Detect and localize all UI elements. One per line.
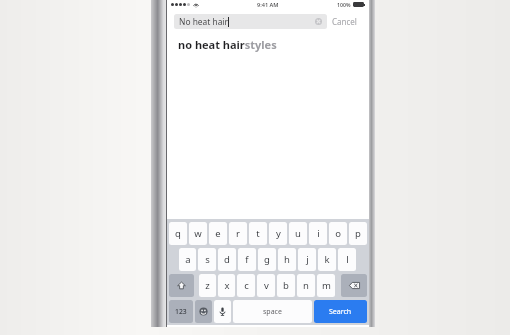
button[interactable]: t [249, 222, 267, 245]
staticText: 123 [175, 307, 187, 316]
staticText: g [264, 253, 270, 266]
staticText: 100% [337, 1, 351, 8]
button[interactable]: f [238, 248, 256, 271]
staticText: h [284, 253, 290, 266]
staticText: i [317, 227, 320, 240]
button[interactable]: z [199, 274, 216, 297]
button[interactable]: o [329, 222, 347, 245]
staticText: d [224, 253, 230, 266]
button[interactable]: Dictate [214, 300, 231, 323]
button[interactable]: y [269, 222, 287, 245]
staticText: f [245, 253, 249, 266]
staticText: No heat hair [179, 16, 228, 27]
button[interactable]: d [218, 248, 236, 271]
button[interactable]: Cancel [327, 12, 362, 31]
button[interactable]: u [289, 222, 307, 245]
staticText: p [355, 227, 361, 240]
button[interactable]: w [189, 222, 207, 245]
button[interactable]: Delete [341, 274, 367, 297]
button[interactable]: x [218, 274, 235, 297]
staticText: no heat hairstyles [178, 37, 277, 52]
staticText: k [324, 253, 330, 266]
button[interactable]: no heat hairstyles [167, 33, 369, 55]
staticText: s [205, 253, 210, 266]
button[interactable]: p [349, 222, 367, 245]
button[interactable]: h [278, 248, 296, 271]
button[interactable]: i [309, 222, 327, 245]
button[interactable]: m [317, 274, 335, 297]
staticText: j [306, 253, 309, 266]
staticText: x [224, 279, 230, 292]
button[interactable]: c [237, 274, 255, 297]
button[interactable]: No heat hair [174, 14, 327, 29]
staticText: w [194, 227, 202, 240]
staticText: n [303, 279, 309, 292]
staticText: Search [329, 307, 352, 317]
button[interactable]: 123 [169, 300, 193, 323]
staticText: t [256, 227, 260, 240]
staticText: z [205, 279, 210, 292]
button[interactable]: k [318, 248, 336, 271]
staticText: b [283, 279, 289, 292]
button[interactable]: a [179, 248, 196, 271]
button[interactable]: Shift [169, 274, 194, 297]
staticText: a [185, 253, 191, 266]
staticText: space [263, 307, 282, 317]
staticText: 9:41 AM [257, 1, 279, 9]
staticText: y [276, 227, 281, 240]
staticText: m [322, 279, 331, 292]
button[interactable]: l [338, 248, 356, 271]
button[interactable]: Emoji [195, 300, 212, 323]
staticText: e [215, 227, 221, 240]
staticText: o [335, 227, 341, 240]
staticText: r [236, 227, 240, 240]
button[interactable]: r [229, 222, 247, 245]
button[interactable]: Search [314, 300, 367, 323]
button[interactable]: g [258, 248, 276, 271]
staticText: c [244, 279, 249, 292]
staticText: u [295, 227, 301, 240]
staticText: l [346, 253, 349, 266]
button[interactable]: s [198, 248, 216, 271]
button[interactable]: n [297, 274, 315, 297]
button[interactable]: b [277, 274, 295, 297]
staticText: v [264, 279, 269, 292]
button[interactable]: q [169, 222, 187, 245]
staticText: Cancel [332, 16, 357, 27]
button[interactable]: space [233, 300, 312, 323]
button[interactable]: j [298, 248, 316, 271]
staticText: q [175, 227, 181, 240]
button[interactable]: Clear text [315, 18, 322, 25]
button[interactable]: e [209, 222, 227, 245]
button[interactable]: v [257, 274, 275, 297]
